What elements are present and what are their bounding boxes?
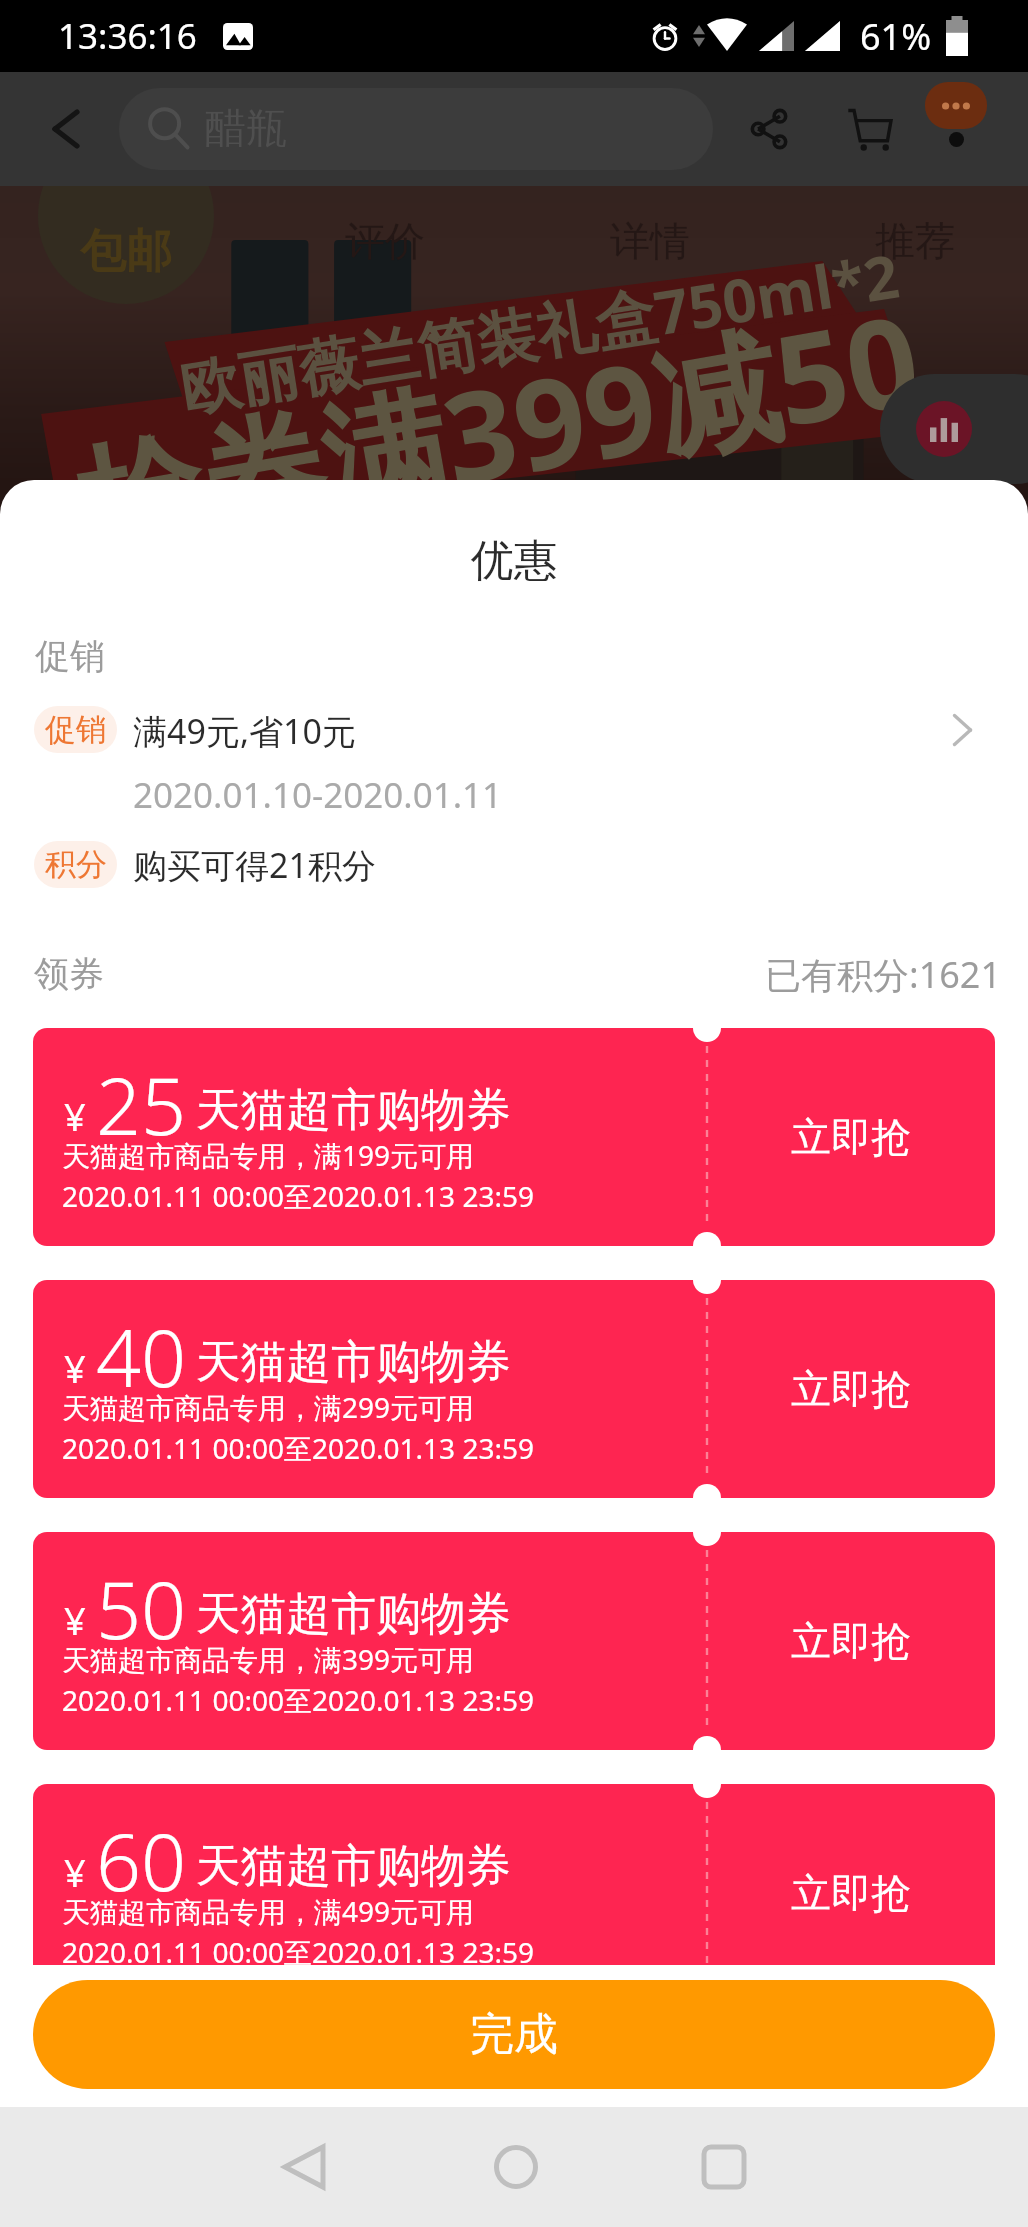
staticText: 抢券满399减50 bbox=[64, 271, 931, 486]
button[interactable]: 醋瓶 bbox=[119, 88, 713, 170]
staticText: 包邮 bbox=[80, 223, 172, 281]
button[interactable]: 立即抢 bbox=[707, 1028, 995, 1246]
button[interactable]: 促销 bbox=[0, 706, 1028, 817]
staticText: 25 bbox=[96, 1051, 187, 1159]
staticText: 2020.01.10-2020.01.11 bbox=[133, 771, 503, 819]
staticText: 领券 bbox=[34, 952, 104, 996]
staticText: 天猫超市商品专用，满499元可用 bbox=[62, 1892, 475, 1930]
button[interactable]: 立即抢 bbox=[707, 1784, 995, 2002]
button[interactable]: Statistics bbox=[880, 374, 1028, 484]
staticText: 立即抢 bbox=[791, 1364, 911, 1414]
button[interactable]: Back bbox=[244, 2107, 364, 2227]
staticText: 50 bbox=[96, 1555, 187, 1663]
button[interactable]: Back bbox=[36, 99, 96, 159]
staticText: 醋瓶 bbox=[205, 103, 287, 155]
staticText: 立即抢 bbox=[791, 1112, 911, 1162]
staticText: 评价 bbox=[345, 216, 425, 266]
staticText: 已有积分:1621 bbox=[765, 950, 1002, 999]
staticText: 天猫超市商品专用，满199元可用 bbox=[62, 1136, 475, 1174]
staticText: 立即抢 bbox=[791, 1868, 911, 1918]
staticText: 2020.01.11 00:00至2020.01.13 23:59 bbox=[62, 1177, 534, 1215]
staticText: ¥ bbox=[64, 1342, 86, 1394]
staticText: 40 bbox=[96, 1303, 187, 1411]
button[interactable]: Share bbox=[734, 94, 804, 164]
staticText: 促销 bbox=[45, 710, 107, 749]
staticText: 详情 bbox=[610, 216, 690, 266]
button[interactable]: 完成 bbox=[33, 1980, 995, 2089]
staticText: ¥ bbox=[64, 1090, 86, 1142]
staticText: 推荐 bbox=[875, 216, 955, 266]
staticText: 61% bbox=[860, 12, 932, 61]
staticText: 满49元,省10元 bbox=[133, 708, 356, 754]
staticText: 完成 bbox=[470, 2007, 558, 2062]
button[interactable]: Shopping cart bbox=[834, 94, 904, 164]
staticText: 天猫超市购物券 bbox=[196, 1838, 511, 1895]
staticText: 优惠 bbox=[0, 534, 1028, 588]
button[interactable]: Home bbox=[456, 2107, 576, 2227]
staticText: 天猫超市购物券 bbox=[196, 1334, 511, 1391]
staticText: 促销 bbox=[35, 634, 105, 678]
staticText: 天猫超市商品专用，满399元可用 bbox=[62, 1640, 475, 1678]
staticText: 购买可得21积分 bbox=[133, 842, 376, 888]
staticText: 2020.01.11 00:00至2020.01.13 23:59 bbox=[62, 1933, 534, 1971]
staticText: 欧丽薇兰简装礼盒750ml*2 bbox=[174, 234, 905, 428]
staticText: ¥ bbox=[64, 1846, 86, 1898]
staticText: 2020.01.11 00:00至2020.01.13 23:59 bbox=[62, 1681, 534, 1719]
staticText: ¥ bbox=[64, 1594, 86, 1646]
button[interactable]: Recent apps bbox=[664, 2107, 784, 2227]
staticText: 60 bbox=[96, 1807, 187, 1915]
staticText: 积分 bbox=[45, 845, 107, 884]
staticText: 天猫超市购物券 bbox=[196, 1586, 511, 1643]
button[interactable]: 立即抢 bbox=[707, 1532, 995, 1750]
button[interactable]: 积分 bbox=[34, 841, 994, 888]
staticText: 天猫超市购物券 bbox=[196, 1082, 511, 1139]
staticText: 天猫超市商品专用，满299元可用 bbox=[62, 1388, 475, 1426]
staticText: 立即抢 bbox=[791, 1616, 911, 1666]
button[interactable]: 立即抢 bbox=[707, 1280, 995, 1498]
button[interactable]: More options bbox=[925, 82, 987, 129]
staticText: 13:36:16 bbox=[58, 12, 197, 60]
staticText: 2020.01.11 00:00至2020.01.13 23:59 bbox=[62, 1429, 534, 1467]
